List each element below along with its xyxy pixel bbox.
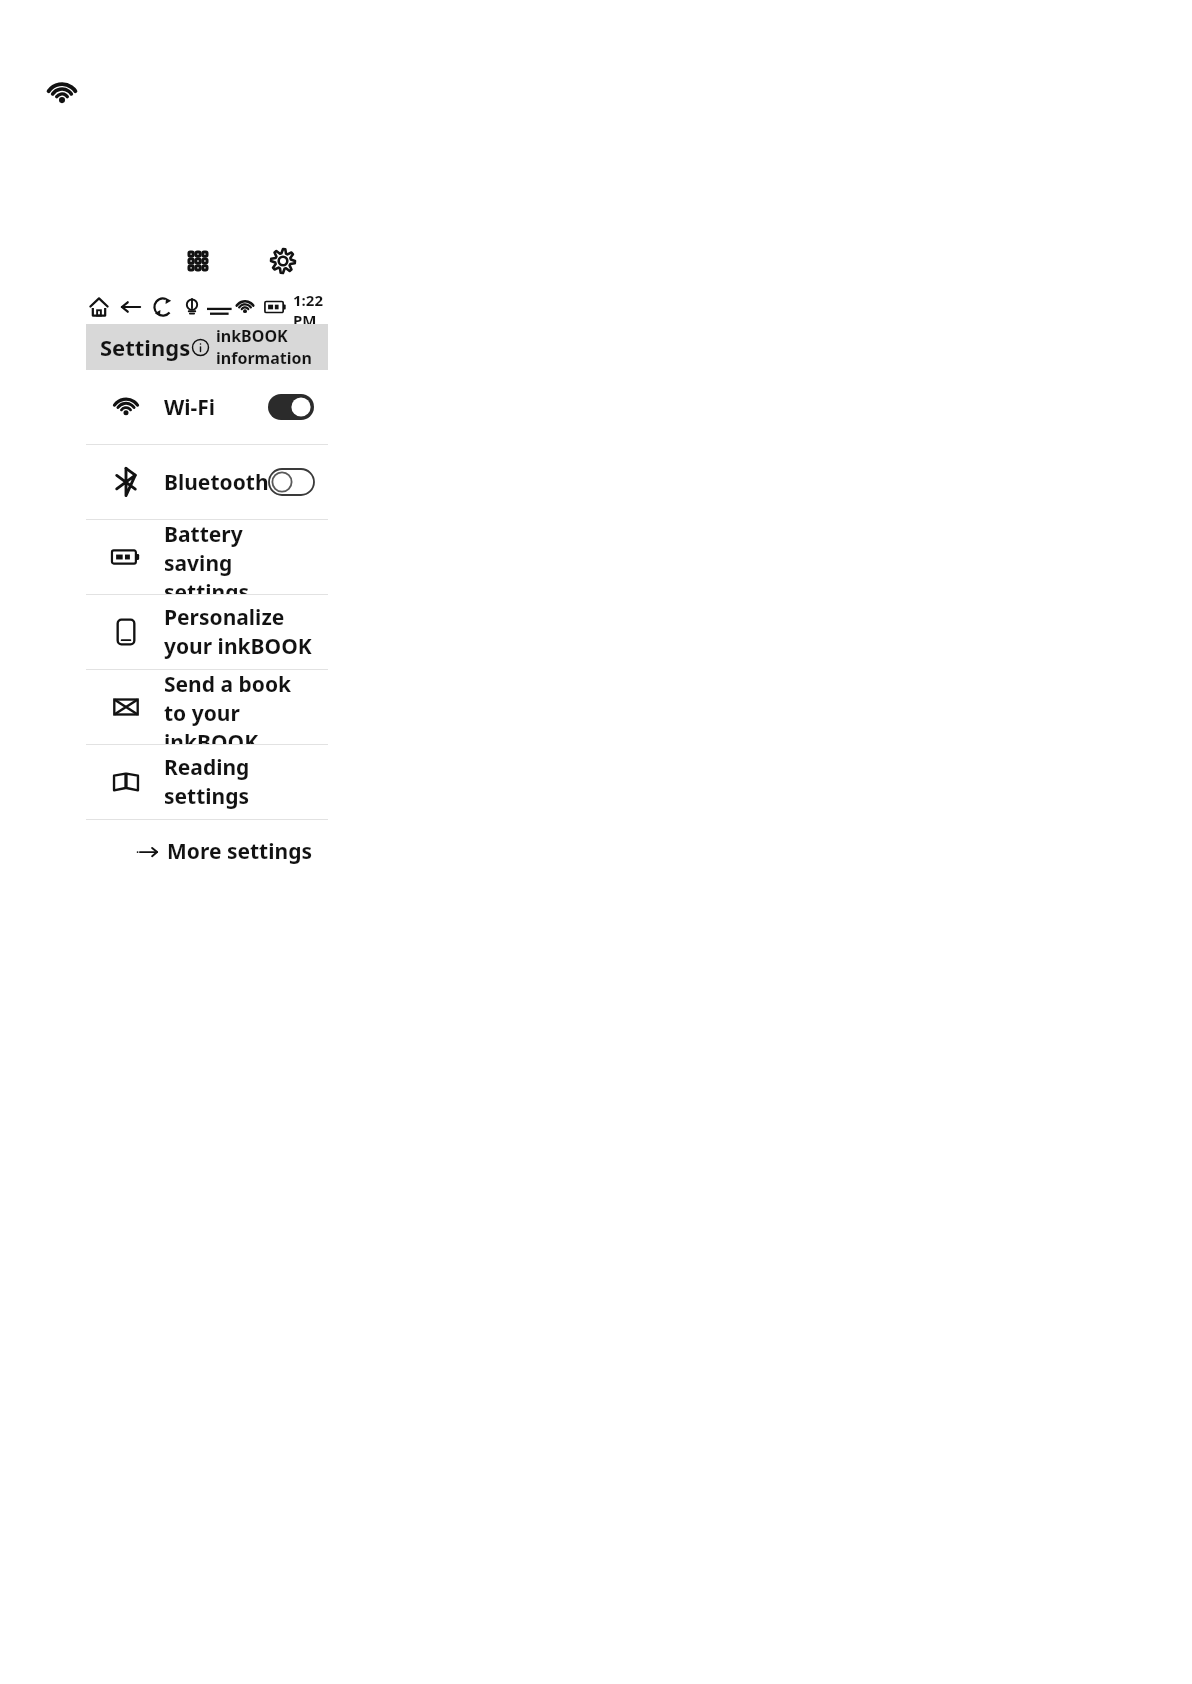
button[interactable]: Personalize your inkBOOK [86, 595, 328, 669]
button[interactable]: Toggle on [268, 394, 314, 420]
button[interactable]: Apps [184, 247, 212, 275]
button[interactable]: Front light [180, 295, 204, 319]
button[interactable]: Settings [268, 246, 298, 276]
button[interactable]: Send a book to your inkBOOK [86, 670, 328, 744]
button[interactable]: Reading settings [86, 745, 328, 819]
staticText: Battery saving settings [164, 520, 314, 594]
staticText: inkBOOK information [216, 325, 314, 369]
button[interactable]: Back [118, 294, 144, 320]
button[interactable]: Wi-Fi [86, 370, 328, 444]
staticText: Wi-Fi [164, 393, 216, 422]
staticText: 1:22 PM [293, 290, 328, 324]
button[interactable]: Battery saving settings [86, 520, 328, 594]
staticText: Send a book to your inkBOOK [164, 670, 314, 744]
button[interactable]: More settings [86, 820, 328, 882]
staticText: More settings [167, 837, 312, 866]
button[interactable]: Home [86, 294, 112, 320]
staticText: Settings [100, 332, 191, 362]
button[interactable]: Toggle off [269, 469, 314, 495]
staticText: Reading settings [164, 753, 314, 811]
other: Wi-Fi status [45, 76, 79, 110]
button[interactable]: inkBOOK information [191, 325, 314, 369]
button[interactable]: Refresh [150, 294, 176, 320]
button[interactable]: Bluetooth [86, 445, 328, 519]
staticText: Personalize your inkBOOK [164, 603, 314, 661]
button[interactable]: Drag handle [204, 295, 234, 319]
staticText: Bluetooth [164, 468, 269, 497]
